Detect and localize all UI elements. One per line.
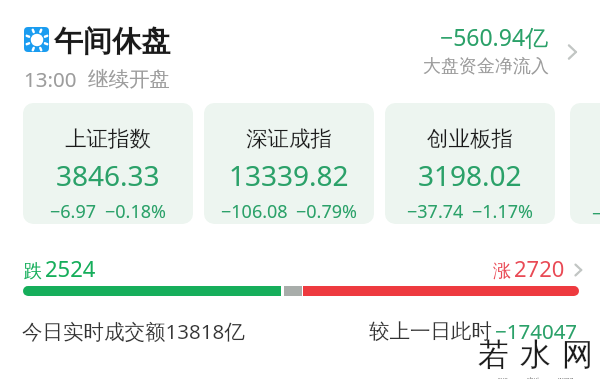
- button[interactable]: 上证指数: [23, 103, 193, 224]
- button[interactable]: 午间休盘: [0, 0, 600, 95]
- staticText: −37.74: [407, 199, 464, 224]
- staticText: 较上一日此时: [369, 318, 492, 344]
- staticText: 3198.02: [418, 156, 522, 194]
- staticText: ruo: [498, 375, 508, 379]
- staticText: −0.18%: [105, 199, 166, 224]
- staticText: 3846.33: [56, 156, 160, 194]
- staticText: 涨: [493, 260, 511, 283]
- staticText: 网: [562, 335, 593, 374]
- staticText: wang: [558, 375, 574, 379]
- staticText: 跌: [24, 260, 42, 283]
- staticText: 2720: [514, 253, 565, 283]
- other: Rise fall details: [569, 261, 587, 279]
- staticText: −21.30: [592, 201, 600, 224]
- staticText: −560.94亿: [440, 21, 549, 52]
- button[interactable]: 跌: [24, 253, 96, 283]
- other: More market fund flow: [561, 41, 583, 63]
- staticText: 水: [520, 335, 551, 374]
- button[interactable]: 深证成指: [204, 103, 374, 224]
- staticText: 若: [478, 335, 509, 374]
- staticText: 深证成指: [246, 125, 332, 152]
- button[interactable]: 涨: [493, 253, 587, 283]
- staticText: −1.17%: [472, 199, 533, 224]
- staticText: −174047: [495, 317, 578, 345]
- button[interactable]: 科创50: [570, 103, 600, 224]
- staticText: 午间休盘: [54, 23, 170, 60]
- staticText: 2524: [45, 253, 96, 283]
- staticText: 今日实时成交额13818亿: [22, 317, 245, 345]
- staticText: 13339.82: [229, 156, 349, 194]
- staticText: 大盘资金净流入: [423, 55, 549, 78]
- staticText: shui: [527, 375, 539, 379]
- staticText: −0.79%: [296, 199, 357, 224]
- staticText: −106.08: [221, 199, 288, 224]
- staticText: 上证指数: [65, 125, 151, 152]
- staticText: 继续开盘: [88, 66, 170, 92]
- staticText: 13:00: [24, 65, 77, 93]
- button[interactable]: 创业板指: [385, 103, 555, 224]
- staticText: 创业板指: [427, 125, 513, 152]
- staticText: −6.97: [50, 199, 97, 224]
